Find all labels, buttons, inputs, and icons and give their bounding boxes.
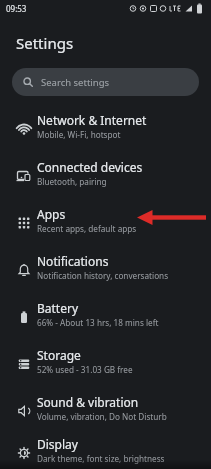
button[interactable]: Network & Internet [0, 102, 211, 149]
button[interactable]: Display [0, 431, 211, 469]
staticText: Settings [16, 33, 74, 53]
staticText: Sound & vibration [37, 394, 139, 410]
button[interactable]: Search settings [12, 68, 199, 96]
button[interactable]: Connected devices [0, 149, 211, 196]
staticText: Search settings [41, 76, 110, 89]
staticText: Notifications [37, 253, 109, 269]
button[interactable]: Notifications [0, 243, 211, 290]
staticText: Storage [37, 347, 81, 363]
staticText: Battery [37, 300, 79, 316]
button[interactable]: Apps [0, 196, 211, 243]
staticText: Bluetooth, pairing [37, 176, 107, 187]
staticText: 09:53 [6, 3, 27, 14]
button[interactable]: Battery [0, 290, 211, 337]
staticText: Network & Internet [37, 112, 147, 128]
staticText: Display [37, 436, 78, 452]
staticText: 66% - About 13 hrs, 18 mins left [37, 317, 159, 328]
button[interactable]: Sound & vibration [0, 384, 211, 431]
staticText: Mobile, Wi-Fi, hotspot [37, 129, 121, 140]
button[interactable]: Storage [0, 337, 211, 384]
staticText: Notification history, conversations [37, 270, 169, 281]
staticText: Dark theme, font size, brightness [37, 453, 165, 464]
staticText: 52% used - 31.03 GB free [37, 364, 133, 375]
staticText: Connected devices [37, 159, 143, 175]
staticText: Recent apps, default apps [37, 223, 137, 234]
staticText: Volume, vibration, Do Not Disturb [37, 411, 167, 422]
staticText: Apps [37, 206, 66, 222]
